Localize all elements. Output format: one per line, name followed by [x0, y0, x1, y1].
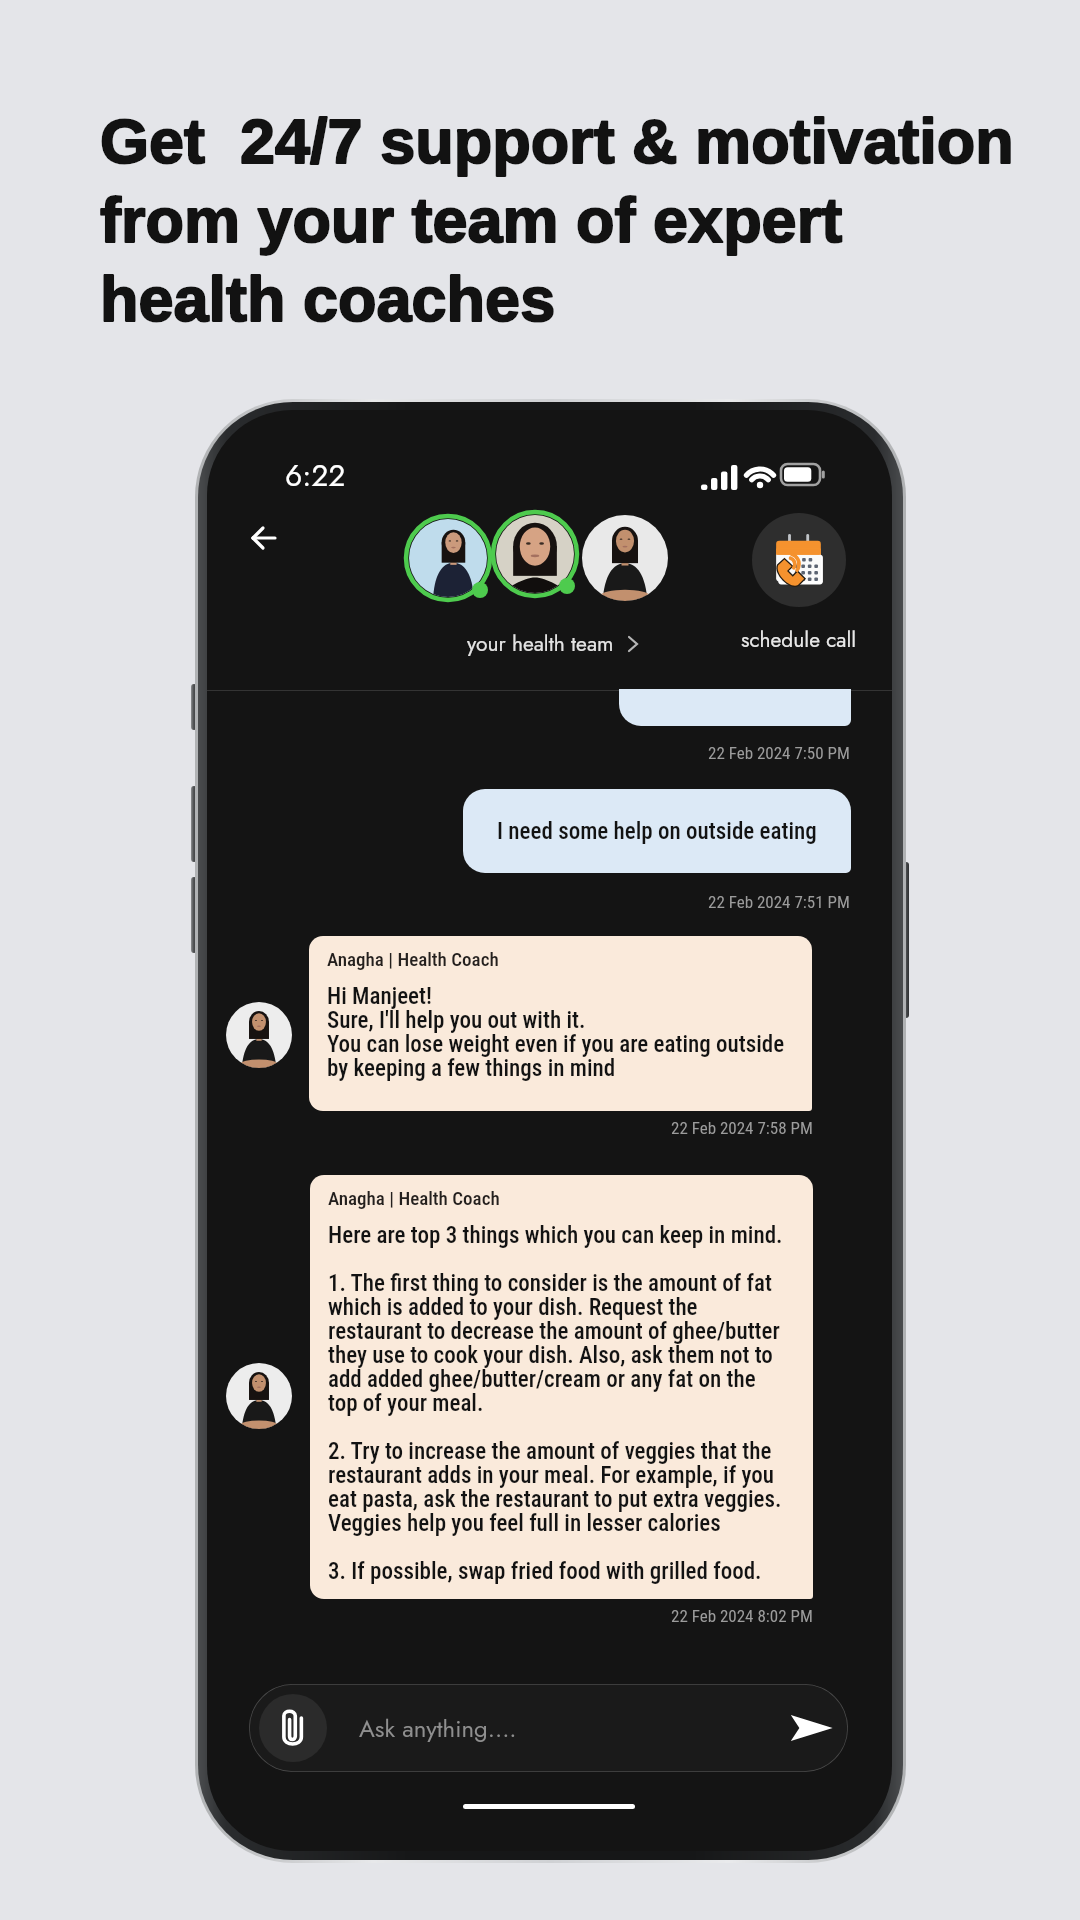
- button[interactable]: schedule call: [723, 513, 875, 659]
- staticText: 22 Feb 2024 7:51 PM: [708, 892, 850, 912]
- button[interactable]: Back: [243, 517, 285, 559]
- staticText: Get 24/7 support & motivation from your …: [100, 106, 1014, 335]
- button[interactable]: Anagha | Health Coach: [310, 1175, 813, 1599]
- staticText: schedule call: [741, 625, 857, 655]
- button[interactable]: Attach file: [259, 1694, 327, 1762]
- staticText: I need some help on outside eating: [497, 818, 817, 845]
- staticText: 22 Feb 2024 8:02 PM: [671, 1606, 813, 1626]
- staticText: Anagha | Health Coach: [327, 948, 499, 970]
- staticText: your health team: [467, 629, 614, 659]
- staticText: Get 24/7 support & motivation from your …: [100, 106, 1014, 335]
- staticText: 22 Feb 2024 7:58 PM: [671, 1118, 813, 1138]
- button[interactable]: Attach file: [249, 1684, 848, 1772]
- staticText: Anagha | Health Coach: [328, 1187, 500, 1209]
- button[interactable]: I need some help on outside eating: [463, 789, 851, 873]
- button[interactable]: your health team: [400, 510, 678, 656]
- staticText: Ask anything....: [359, 1711, 517, 1746]
- staticText: Hi Manjeet! Sure, I'll help you out with…: [327, 983, 785, 1082]
- staticText: 6:22: [285, 454, 346, 497]
- button[interactable]: Send: [783, 1700, 839, 1756]
- staticText: Here are top 3 things which you can keep…: [328, 1222, 783, 1585]
- button[interactable]: Anagha | Health Coach: [309, 936, 812, 1111]
- staticText: 22 Feb 2024 7:50 PM: [708, 743, 850, 763]
